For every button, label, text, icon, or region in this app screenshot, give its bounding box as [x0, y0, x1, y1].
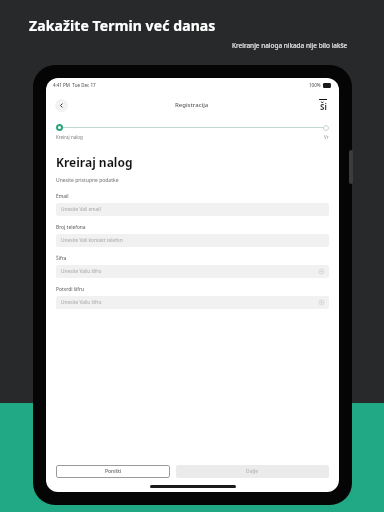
staticText: Zakažite Termin već danas	[29, 16, 216, 35]
staticText: Registracija	[175, 101, 209, 109]
button[interactable]: Back	[55, 99, 68, 112]
button[interactable]: Unesite Vaš kontakt telefon	[56, 234, 329, 247]
staticText: Unesite pristupne podatke	[56, 177, 119, 184]
staticText: Kreiranje naloga nikada nije bilo lakše	[232, 41, 348, 50]
staticText: Email	[56, 193, 69, 200]
staticText: Dalje	[246, 468, 259, 475]
staticText: Unesite Vašu šifru	[61, 268, 102, 275]
staticText: Broj telefona	[56, 224, 86, 231]
button[interactable]: Logo	[316, 98, 330, 112]
staticText: Poništi	[105, 468, 122, 475]
staticText: Ši	[320, 101, 327, 112]
staticText: Unesite Vaš email	[61, 206, 101, 213]
button[interactable]: Unesite Vašu šifru	[56, 265, 329, 278]
button[interactable]: Dalje	[176, 465, 329, 478]
staticText: Kreiraj nalog	[56, 154, 133, 170]
staticText: 4:41 PM Tue Dec 17	[53, 82, 96, 88]
button[interactable]: Unesite Vaš email	[56, 203, 329, 216]
button[interactable]: Poništi	[56, 465, 170, 478]
staticText: 100%	[309, 82, 321, 88]
button[interactable]: Unesite Vašu šifru	[56, 296, 329, 309]
staticText: Šifra	[56, 255, 67, 262]
staticText: Unesite Vašu šifru	[61, 299, 102, 306]
staticText: Vr	[324, 134, 329, 140]
staticText: Kreiraj nalog	[56, 134, 83, 140]
staticText: Unesite Vaš kontakt telefon	[61, 237, 123, 244]
staticText: Potvrdi šifru	[56, 286, 85, 293]
